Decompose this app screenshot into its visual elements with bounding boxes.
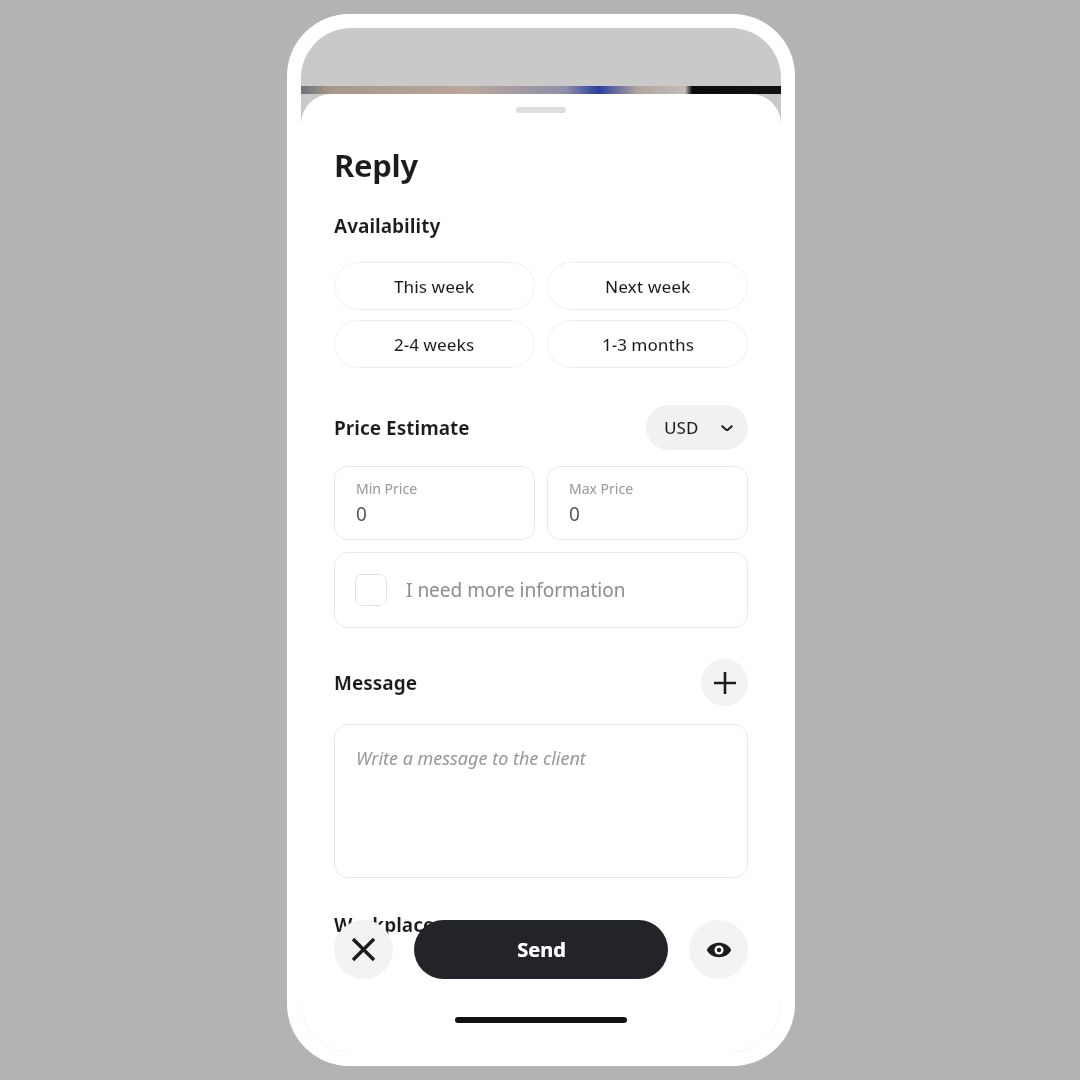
staticText: Reply <box>334 144 418 186</box>
button[interactable]: This week <box>334 262 535 310</box>
staticText: Write a message to the client <box>356 746 586 771</box>
staticText: 0 <box>356 501 367 527</box>
staticText: USD <box>664 416 699 439</box>
button[interactable]: 1-3 months <box>547 320 748 368</box>
button[interactable]: Preview <box>689 920 748 979</box>
button[interactable]: USD <box>646 405 748 450</box>
staticText: Availability <box>334 213 441 239</box>
staticText: I need more information <box>406 577 626 603</box>
staticText: 2-4 weeks <box>394 333 475 356</box>
button[interactable]: I need more information <box>334 552 748 628</box>
staticText: Next week <box>605 275 691 298</box>
button[interactable]: Write a message to the client <box>334 724 748 878</box>
button[interactable]: Send <box>414 920 668 979</box>
button[interactable]: Next week <box>547 262 748 310</box>
button[interactable]: 2-4 weeks <box>334 320 535 368</box>
button[interactable]: Close <box>334 920 393 979</box>
staticText: Send <box>517 936 566 963</box>
staticText: Min Price <box>356 479 418 498</box>
staticText: Max Price <box>569 479 634 498</box>
staticText: 1-3 months <box>602 333 694 356</box>
staticText: Price Estimate <box>334 415 470 441</box>
staticText: This week <box>394 275 475 298</box>
staticText: 0 <box>569 501 580 527</box>
button[interactable]: Min Price <box>334 466 535 540</box>
button[interactable]: Add message template <box>701 659 748 706</box>
staticText: Workplace <box>334 912 435 938</box>
button[interactable]: Max Price <box>547 466 748 540</box>
staticText: Message <box>334 670 418 696</box>
